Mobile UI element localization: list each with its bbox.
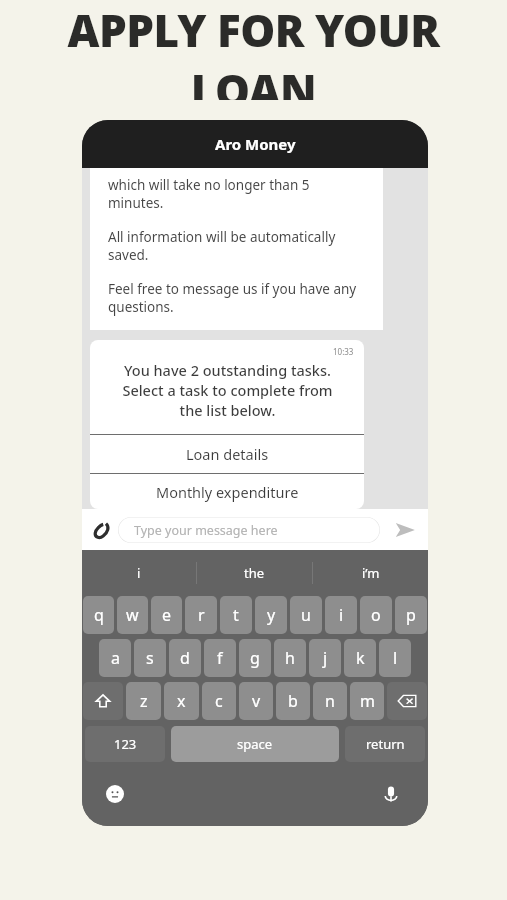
button[interactable]: n xyxy=(313,682,347,720)
staticText: return xyxy=(366,735,405,753)
staticText: q xyxy=(94,604,104,626)
button[interactable]: Shift xyxy=(83,682,123,720)
staticText: z xyxy=(140,690,148,712)
staticText: m xyxy=(360,690,375,712)
button[interactable]: return xyxy=(345,726,425,762)
button[interactable]: Type your message here xyxy=(118,517,380,543)
staticText: u xyxy=(301,604,311,626)
staticText: Aro Money xyxy=(215,134,296,154)
staticText: which will take no longer than 5 minutes… xyxy=(108,176,310,212)
staticText: x xyxy=(177,690,186,712)
button[interactable]: i xyxy=(325,596,357,634)
button[interactable]: j xyxy=(309,639,341,677)
button[interactable]: b xyxy=(276,682,310,720)
button[interactable]: l xyxy=(379,639,411,677)
button[interactable]: Loan details xyxy=(90,435,364,473)
button[interactable]: w xyxy=(117,596,148,634)
staticText: d xyxy=(180,647,190,669)
staticText: f xyxy=(217,647,223,669)
staticText: APPLY FOR YOUR LOAN xyxy=(0,0,507,100)
staticText: 10:33 xyxy=(333,346,354,357)
staticText: y xyxy=(267,604,276,626)
button[interactable]: t xyxy=(220,596,252,634)
staticText: t xyxy=(233,604,239,626)
staticText: Monthly expenditure xyxy=(156,482,299,502)
button[interactable]: p xyxy=(395,596,427,634)
button[interactable]: Backspace xyxy=(387,682,427,720)
button[interactable]: q xyxy=(83,596,114,634)
button[interactable]: Emoji xyxy=(104,783,126,805)
button[interactable]: Monthly expenditure xyxy=(90,474,364,509)
button[interactable]: x xyxy=(164,682,199,720)
button[interactable]: v xyxy=(239,682,273,720)
button[interactable]: space xyxy=(171,726,339,762)
button[interactable]: i’m xyxy=(313,550,428,596)
button[interactable]: Send xyxy=(390,515,420,545)
staticText: i xyxy=(137,564,141,582)
staticText: Type your message here xyxy=(134,522,278,539)
button[interactable]: i xyxy=(82,550,196,596)
staticText: space xyxy=(237,735,273,753)
button[interactable]: h xyxy=(274,639,306,677)
staticText: r xyxy=(198,604,205,626)
button[interactable]: m xyxy=(350,682,384,720)
staticText: g xyxy=(250,647,260,669)
button[interactable]: z xyxy=(126,682,161,720)
staticText: j xyxy=(323,647,328,669)
staticText: the xyxy=(244,564,265,582)
staticText: s xyxy=(146,647,154,669)
button[interactable]: s xyxy=(134,639,166,677)
button[interactable]: r xyxy=(185,596,217,634)
staticText: Feel free to message us if you have any … xyxy=(108,280,357,316)
staticText: 123 xyxy=(114,735,137,753)
staticText: All information will be automatically sa… xyxy=(108,228,336,264)
button[interactable]: 123 xyxy=(85,726,165,762)
button[interactable]: Attach file xyxy=(89,517,115,543)
button[interactable]: u xyxy=(290,596,322,634)
button[interactable]: c xyxy=(202,682,236,720)
staticText: v xyxy=(252,690,261,712)
button[interactable]: a xyxy=(99,639,131,677)
staticText: c xyxy=(215,690,223,712)
button[interactable]: k xyxy=(344,639,376,677)
staticText: Loan details xyxy=(186,444,269,464)
staticText: You have 2 outstanding tasks. Select a t… xyxy=(122,360,333,420)
button[interactable]: o xyxy=(360,596,392,634)
staticText: e xyxy=(162,604,172,626)
staticText: k xyxy=(356,647,365,669)
staticText: b xyxy=(288,690,298,712)
staticText: w xyxy=(126,604,139,626)
staticText: n xyxy=(325,690,335,712)
button[interactable]: e xyxy=(151,596,182,634)
staticText: i xyxy=(339,604,344,626)
staticText: p xyxy=(406,604,416,626)
button[interactable]: d xyxy=(169,639,201,677)
button[interactable]: f xyxy=(204,639,236,677)
staticText: h xyxy=(285,647,295,669)
staticText: l xyxy=(393,647,398,669)
staticText: o xyxy=(371,604,381,626)
button[interactable]: Voice input xyxy=(380,783,402,805)
button[interactable]: the xyxy=(197,550,312,596)
button[interactable]: g xyxy=(239,639,271,677)
staticText: a xyxy=(111,647,120,669)
button[interactable]: y xyxy=(255,596,287,634)
staticText: i’m xyxy=(362,564,380,582)
